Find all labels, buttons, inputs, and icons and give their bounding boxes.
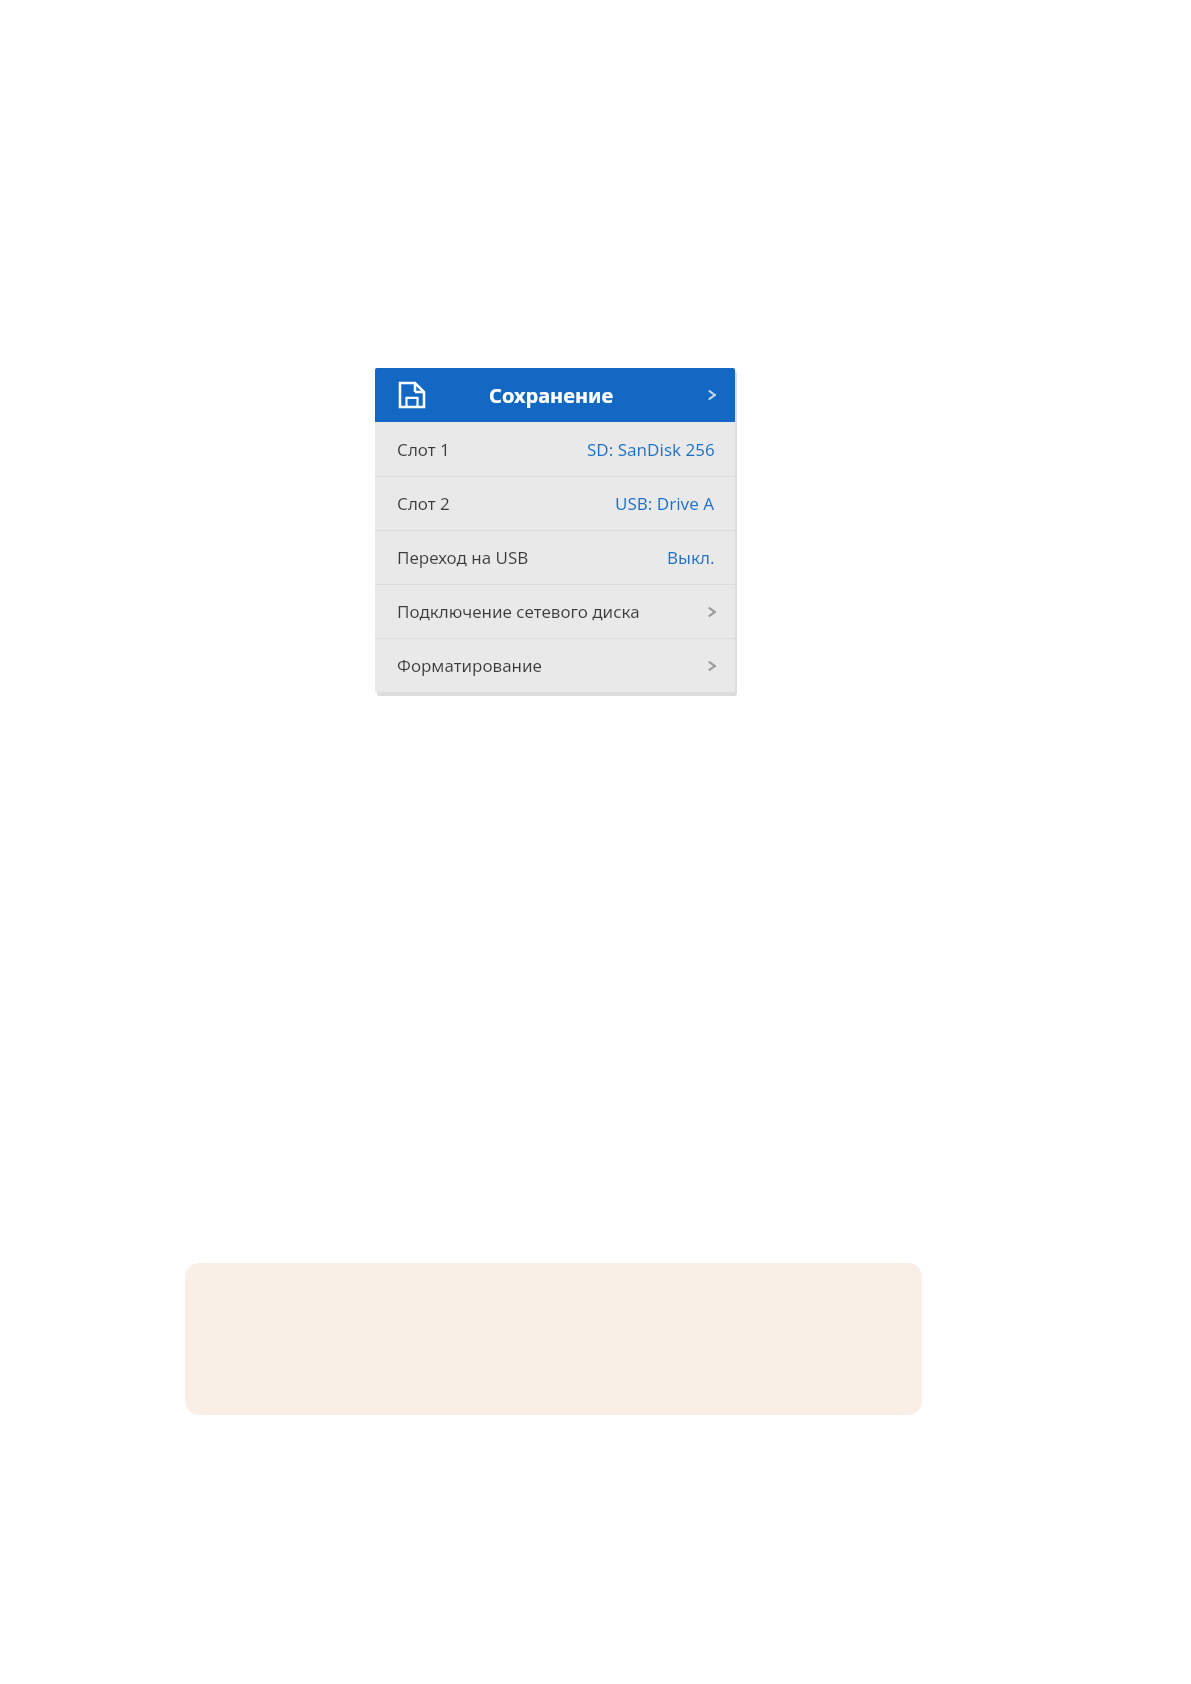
staticText: Переход на USB — [397, 546, 529, 569]
other: Открыть Форматирование — [703, 657, 721, 675]
staticText: Выкл. — [667, 546, 715, 569]
other: Открыть — [703, 386, 721, 404]
button[interactable]: Сохранение — [375, 368, 735, 422]
button[interactable]: Подключение сетевого диска — [375, 585, 735, 638]
staticText: Подключение сетевого диска — [397, 600, 640, 623]
staticText: USB: Drive A — [615, 492, 715, 515]
other: Открыть Подключение сетевого диска — [703, 603, 721, 621]
button[interactable]: Слот 2 — [375, 477, 735, 530]
staticText: Слот 2 — [397, 492, 450, 515]
button[interactable]: Форматирование — [375, 639, 735, 692]
other: Сохранение — [397, 380, 427, 410]
button[interactable]: Переход на USB — [375, 531, 735, 584]
staticText: Форматирование — [397, 654, 542, 677]
staticText: Слот 1 — [397, 438, 450, 461]
staticText: SD: SanDisk 256 — [587, 438, 715, 461]
button[interactable]: Слот 1 — [375, 422, 735, 476]
staticText: Сохранение — [489, 382, 614, 409]
